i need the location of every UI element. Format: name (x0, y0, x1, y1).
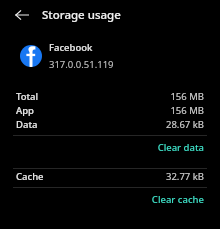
button[interactable]: Data (0, 117, 220, 131)
staticText: 28.67 kB (165, 118, 204, 131)
staticText: 317.0.0.51.119 (49, 58, 114, 71)
staticText: 156 MB (170, 104, 204, 117)
staticText: Cache (16, 170, 44, 183)
staticText: Clear cache (151, 193, 204, 206)
button[interactable]: Back (10, 3, 34, 27)
staticText: 32.77 kB (165, 170, 204, 183)
staticText: Data (16, 118, 38, 131)
staticText: Facebook (49, 41, 93, 54)
staticText: Clear data (157, 141, 204, 154)
button[interactable]: App (0, 103, 220, 117)
staticText: Total (16, 90, 39, 103)
staticText: 156 MB (170, 90, 204, 103)
button[interactable]: Total (0, 89, 220, 103)
button[interactable]: Clear data (0, 136, 220, 158)
staticText: Storage usage (42, 7, 121, 23)
button[interactable]: Clear cache (0, 188, 220, 210)
staticText: App (16, 104, 35, 117)
button[interactable]: Facebook (0, 39, 220, 73)
button[interactable]: Cache (0, 169, 220, 183)
